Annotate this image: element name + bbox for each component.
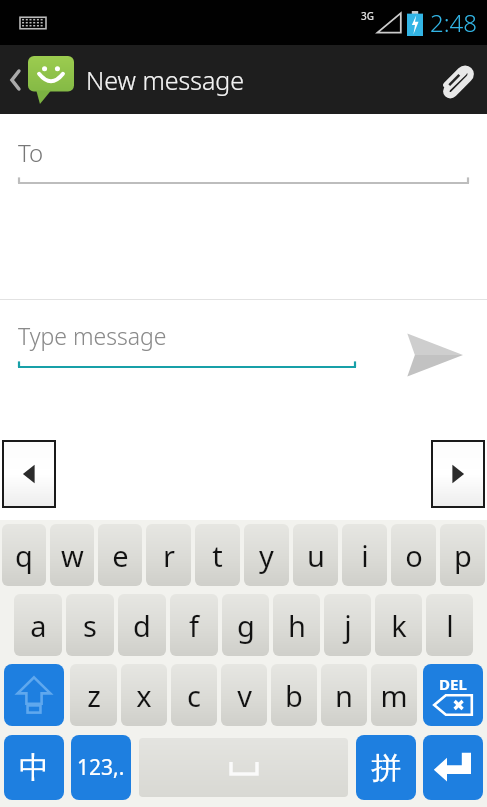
button[interactable]: c bbox=[171, 664, 217, 726]
button[interactable]: To bbox=[18, 136, 469, 185]
button[interactable]: Type message bbox=[18, 320, 380, 369]
staticText: r bbox=[163, 536, 175, 575]
staticText: s bbox=[83, 606, 97, 645]
button[interactable]: Chinese input bbox=[4, 735, 64, 800]
button[interactable]: k bbox=[375, 594, 422, 656]
staticText: New message bbox=[86, 63, 245, 97]
staticText: a bbox=[30, 606, 47, 645]
button[interactable]: p bbox=[440, 524, 485, 586]
button[interactable]: g bbox=[222, 594, 269, 656]
staticText: h bbox=[288, 606, 306, 645]
button[interactable]: Delete bbox=[423, 664, 483, 726]
button[interactable]: Enter bbox=[423, 735, 483, 800]
staticText: i bbox=[361, 536, 369, 575]
button[interactable]: j bbox=[324, 594, 371, 656]
staticText: d bbox=[133, 606, 151, 645]
staticText: 2:48 bbox=[430, 6, 477, 39]
staticText: To bbox=[18, 136, 44, 169]
staticText: m bbox=[380, 676, 408, 715]
staticText: l bbox=[446, 606, 454, 645]
button[interactable]: q bbox=[2, 524, 46, 586]
staticText: g bbox=[237, 606, 255, 645]
button[interactable]: Space bbox=[139, 738, 348, 797]
button[interactable]: t bbox=[195, 524, 240, 586]
button[interactable]: w bbox=[50, 524, 94, 586]
button[interactable]: s bbox=[66, 594, 114, 656]
staticText: x bbox=[136, 676, 152, 715]
staticText: y bbox=[259, 536, 274, 575]
button[interactable]: l bbox=[426, 594, 473, 656]
staticText: j bbox=[344, 606, 352, 645]
staticText: c bbox=[187, 676, 201, 715]
staticText: u bbox=[307, 536, 325, 575]
button[interactable]: x bbox=[121, 664, 167, 726]
staticText: Type message bbox=[18, 320, 167, 351]
button[interactable]: y bbox=[244, 524, 289, 586]
staticText: n bbox=[335, 676, 353, 715]
staticText: v bbox=[237, 676, 252, 715]
button[interactable]: n bbox=[321, 664, 367, 726]
button[interactable]: m bbox=[371, 664, 417, 726]
button[interactable]: d bbox=[118, 594, 166, 656]
staticText: 123,. bbox=[77, 753, 125, 782]
button[interactable]: v bbox=[221, 664, 267, 726]
button[interactable]: Previous bbox=[4, 442, 54, 506]
button[interactable]: i bbox=[342, 524, 387, 586]
button[interactable]: New message bbox=[0, 50, 253, 110]
button[interactable]: Next bbox=[433, 442, 483, 506]
button[interactable]: o bbox=[391, 524, 436, 586]
staticText: o bbox=[405, 536, 423, 575]
button[interactable]: f bbox=[170, 594, 218, 656]
button[interactable]: u bbox=[293, 524, 338, 586]
button[interactable]: Send bbox=[380, 300, 487, 410]
button[interactable]: a bbox=[14, 594, 62, 656]
staticText: k bbox=[391, 606, 407, 645]
staticText: e bbox=[112, 536, 129, 575]
staticText: t bbox=[212, 536, 223, 575]
button[interactable]: b bbox=[271, 664, 317, 726]
staticText: DEL bbox=[439, 674, 467, 694]
staticText: 拼 bbox=[371, 749, 401, 787]
button[interactable]: Pinyin bbox=[356, 735, 416, 800]
staticText: z bbox=[87, 676, 101, 715]
button[interactable]: Attach bbox=[423, 45, 487, 114]
button[interactable]: h bbox=[273, 594, 320, 656]
staticText: p bbox=[454, 536, 472, 575]
staticText: q bbox=[15, 536, 33, 575]
staticText: 中 bbox=[19, 749, 49, 787]
button[interactable]: r bbox=[146, 524, 191, 586]
staticText: b bbox=[285, 676, 303, 715]
button[interactable]: z bbox=[70, 664, 117, 726]
staticText: f bbox=[189, 606, 199, 645]
staticText: w bbox=[61, 536, 84, 575]
button[interactable]: Numbers and symbols bbox=[71, 735, 131, 800]
staticText: 3G bbox=[361, 9, 374, 23]
button[interactable]: Shift bbox=[4, 664, 64, 726]
button[interactable]: e bbox=[98, 524, 142, 586]
